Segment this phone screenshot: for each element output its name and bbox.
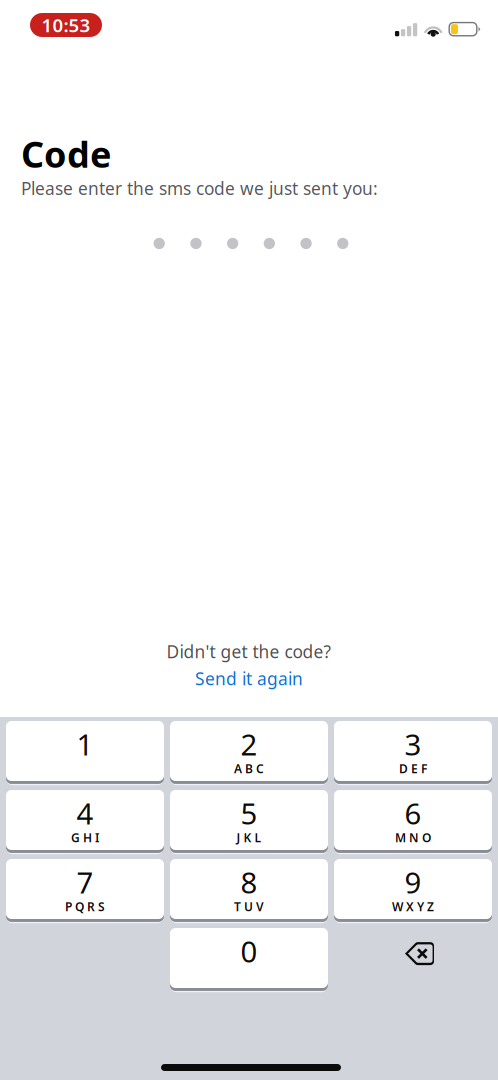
button[interactable]: 2 [170,721,328,785]
staticText: 2 [240,724,257,763]
staticText: G H I [71,829,99,845]
staticText: M N O [395,829,431,845]
staticText: 10:53 [41,13,90,37]
staticText: W X Y Z [392,898,434,914]
staticText: 7 [76,862,93,901]
button[interactable]: 6 [334,790,492,854]
staticText: Please enter the sms code we just sent y… [21,177,378,200]
staticText: 0 [240,931,257,970]
staticText: Didn't get the code? [166,640,331,663]
staticText: Code [21,130,111,178]
button[interactable]: Delete [334,928,492,992]
staticText: 4 [76,793,93,832]
button[interactable]: 3 [334,721,492,785]
button[interactable]: Send it again [195,663,303,690]
staticText: 8 [240,862,257,901]
staticText: Send it again [195,667,303,690]
button[interactable]: 8 [170,859,328,923]
button[interactable]: 9 [334,859,492,923]
button[interactable]: 7 [6,859,164,923]
button[interactable]: 1 [6,721,164,785]
staticText: P Q R S [65,898,105,914]
button[interactable]: 5 [170,790,328,854]
staticText: 1 [76,724,93,763]
staticText: J K L [236,829,261,845]
button[interactable]: 4 [6,790,164,854]
button[interactable]: 0 [170,928,328,992]
staticText: 3 [404,724,421,763]
staticText: A B C [234,760,264,776]
staticText: T U V [234,898,264,914]
staticText: D E F [399,760,427,776]
staticText: 9 [404,862,421,901]
staticText: 5 [240,793,257,832]
staticText: 6 [404,793,421,832]
